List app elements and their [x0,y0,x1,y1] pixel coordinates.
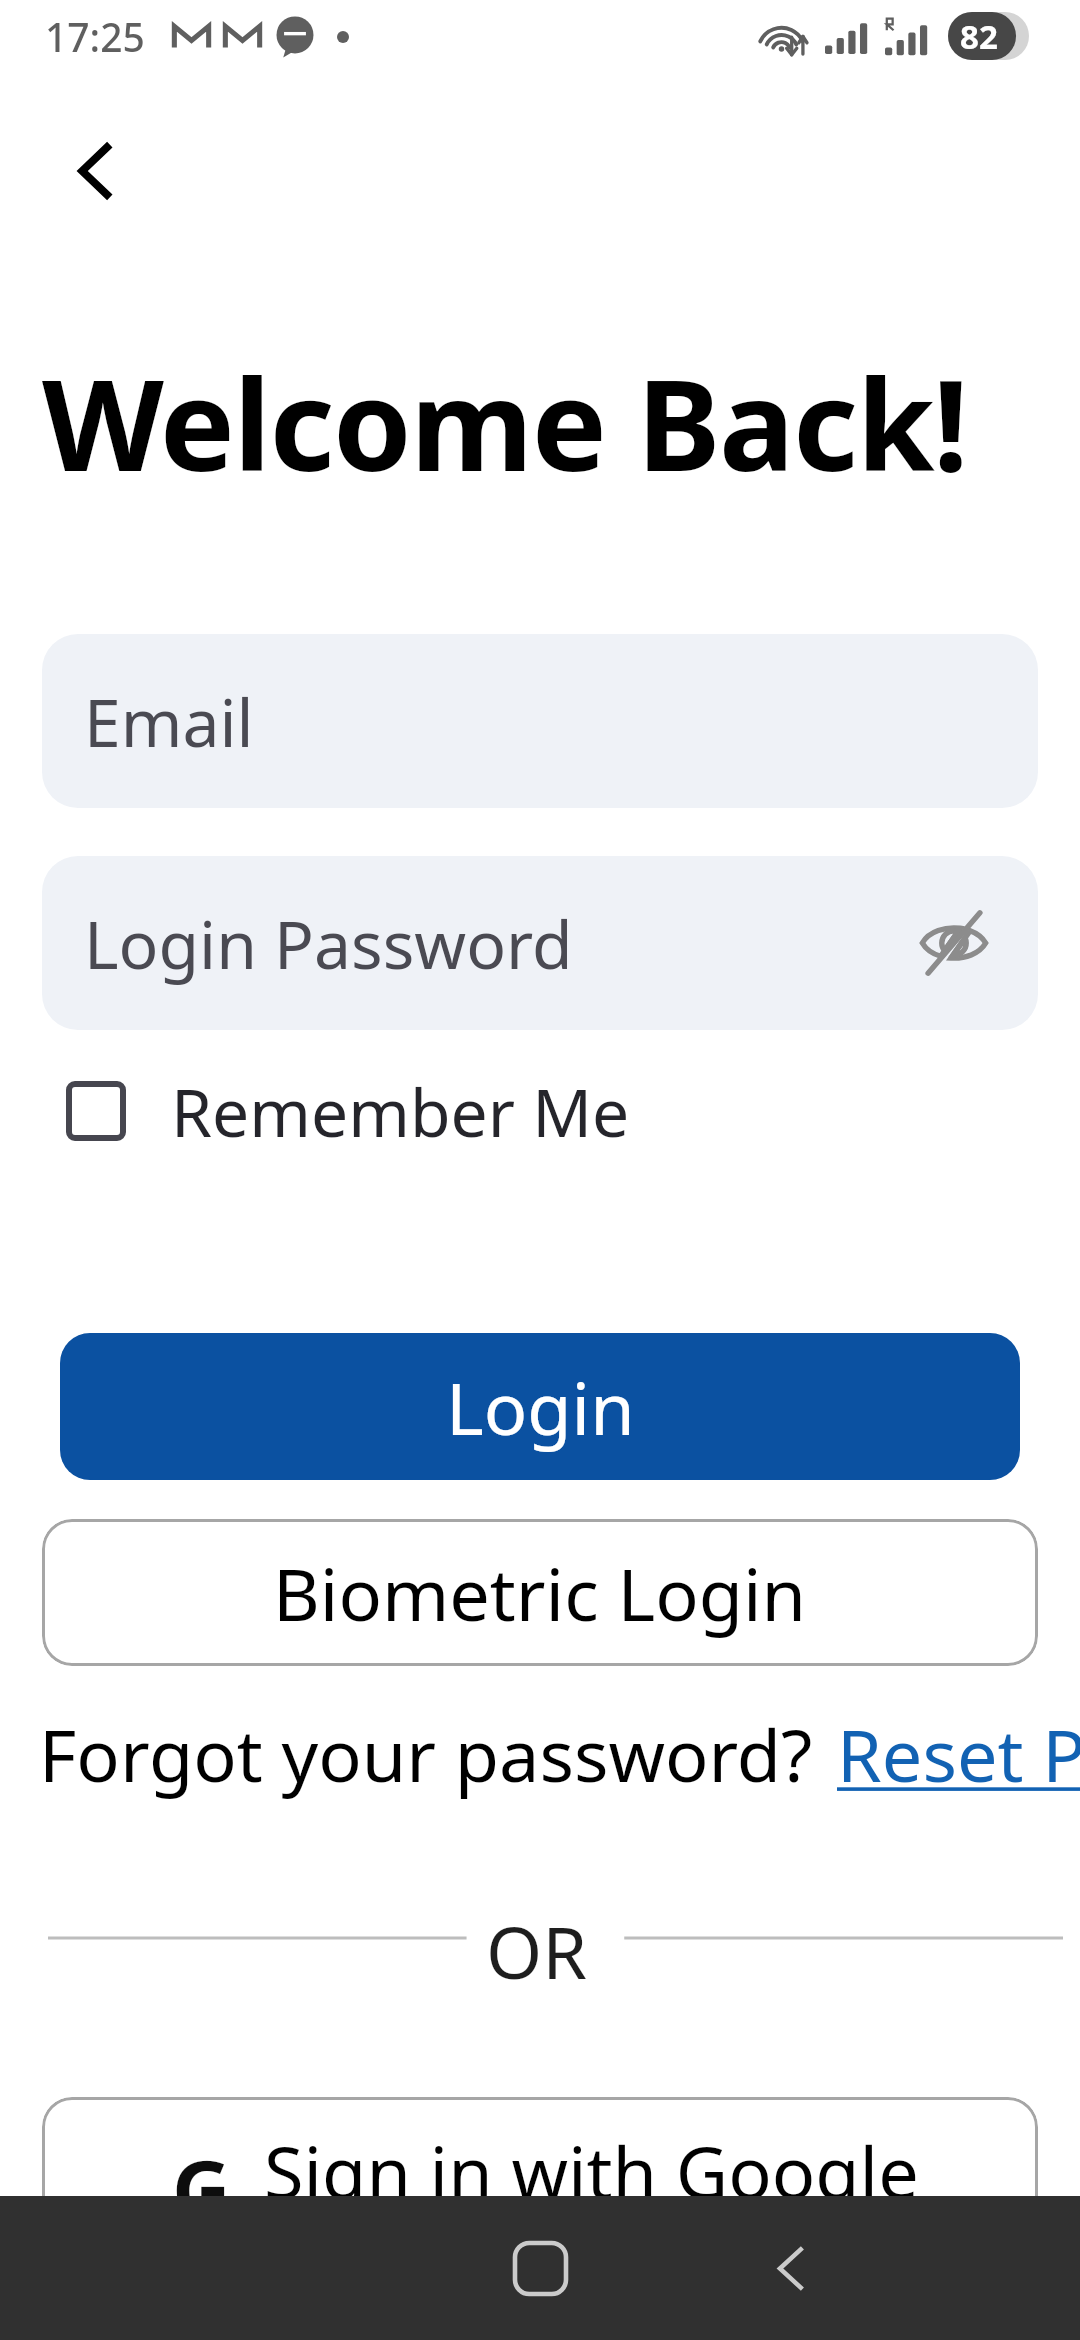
staticText: Login Password [84,898,573,988]
staticText: Email [84,676,254,766]
button[interactable]: G [42,2097,1038,2244]
staticText: Remember Me [171,1066,630,1156]
staticText: Reset Password [837,1705,1080,1803]
button[interactable]: Back [720,2196,864,2340]
button[interactable]: Login [60,1333,1020,1480]
button[interactable]: Home [468,2196,612,2340]
button[interactable]: Show password [894,883,1014,1003]
staticText: 82 [960,14,998,59]
staticText: Biometric Login [273,1544,807,1642]
staticText: Login [446,1358,635,1456]
staticText: Welcome Back! [42,336,968,508]
staticText: Forgot your password? [39,1705,813,1803]
button[interactable]: Remember Me [42,1057,630,1165]
staticText: OR [486,1902,588,1980]
button[interactable]: Login Password [42,856,1038,1030]
button[interactable]: Reset Password [837,1705,1080,1803]
staticText: G [172,2132,231,2210]
button[interactable]: Back [18,90,180,252]
staticText: Sign in with Google [264,2122,919,2220]
button[interactable]: Email [42,634,1038,808]
staticText: 17:25 [45,10,145,63]
button[interactable]: Biometric Login [42,1519,1038,1666]
